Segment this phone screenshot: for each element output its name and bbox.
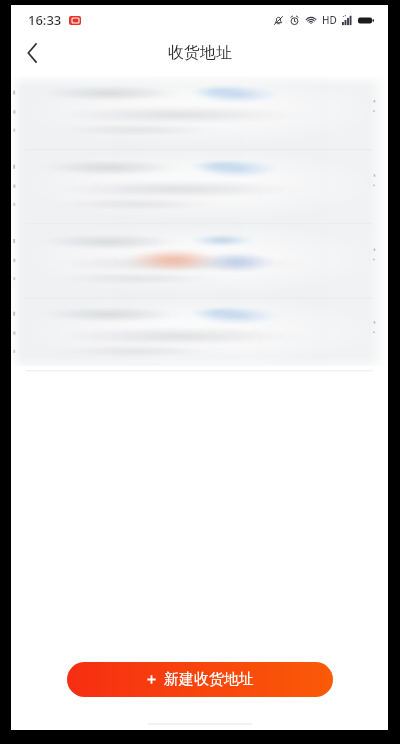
staticText: HD — [322, 13, 337, 27]
button[interactable]: 收货地址 — [11, 220, 388, 294]
button[interactable]: 收货地址 — [11, 146, 388, 220]
staticText: 收货地址 — [168, 43, 232, 63]
staticText: 16:33 — [28, 11, 62, 29]
button[interactable]: 新建收货地址 — [67, 662, 333, 697]
button[interactable]: 收货地址 — [11, 294, 388, 368]
button[interactable]: 收货地址 — [11, 72, 388, 146]
staticText: 新建收货地址 — [164, 670, 254, 689]
button[interactable]: Back — [11, 34, 53, 72]
